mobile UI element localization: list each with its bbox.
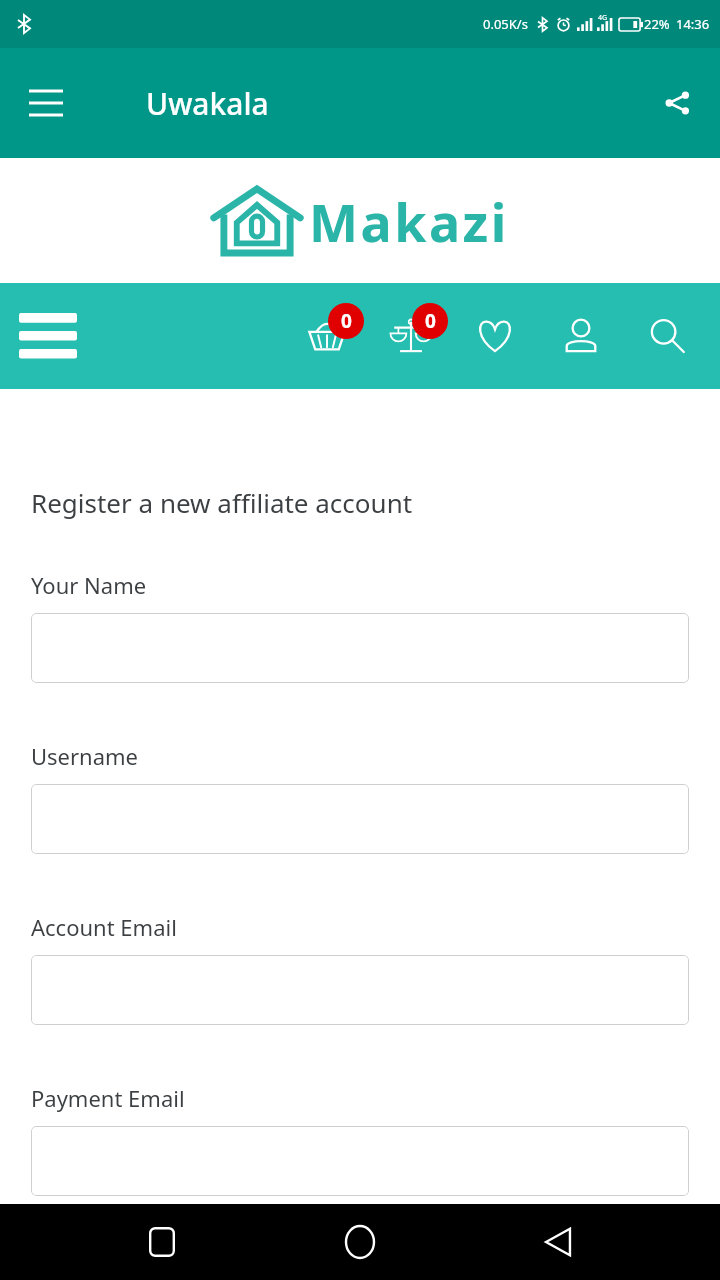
staticText: Makazi <box>309 186 509 257</box>
button[interactable]: Wishlist <box>464 305 526 367</box>
button[interactable]: Home <box>324 1206 396 1278</box>
staticText: Payment Email <box>31 1083 185 1113</box>
button[interactable]: Compare, 0 items <box>380 305 442 367</box>
button[interactable]: Recent apps <box>126 1206 198 1278</box>
staticText: Account Email <box>31 912 177 942</box>
staticText: 0.05K/s <box>483 15 528 33</box>
staticText: Your Name <box>31 570 147 600</box>
button[interactable]: Account Email <box>31 955 689 1025</box>
staticText: Username <box>31 741 139 771</box>
button[interactable]: Shop menu <box>8 296 88 376</box>
button[interactable]: Payment Email <box>31 1126 689 1196</box>
staticText: 4G <box>598 13 608 23</box>
staticText: 0 <box>341 308 352 334</box>
button[interactable]: Account <box>550 305 612 367</box>
button[interactable]: Cart, 0 items <box>296 305 358 367</box>
button[interactable]: Your Name <box>31 613 689 683</box>
button[interactable]: Username <box>31 784 689 854</box>
staticText: Register a new affiliate account <box>31 485 413 520</box>
staticText: 22% <box>644 15 670 33</box>
staticText: Uwakala <box>146 83 269 124</box>
staticText: 14:36 <box>676 15 710 33</box>
button[interactable]: Open navigation menu <box>20 77 72 129</box>
button[interactable]: Search <box>636 305 698 367</box>
button[interactable]: Share <box>652 78 702 128</box>
button[interactable]: Back <box>522 1206 594 1278</box>
staticText: 0 <box>425 308 436 334</box>
